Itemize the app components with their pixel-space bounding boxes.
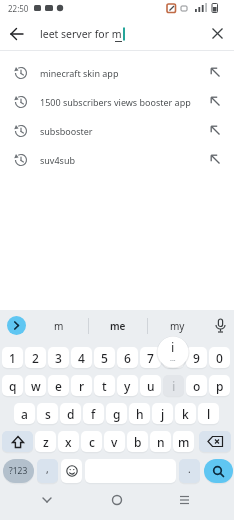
button[interactable]: c	[81, 431, 102, 452]
button[interactable]: n	[150, 431, 171, 452]
button[interactable]: i	[163, 375, 184, 396]
staticText: f	[91, 406, 96, 422]
button[interactable]: ?123	[3, 459, 34, 483]
button[interactable]	[156, 483, 234, 520]
button[interactable]: 8	[163, 347, 184, 368]
staticText: g	[113, 406, 121, 422]
button[interactable]: me	[89, 310, 147, 341]
button[interactable]: 5	[94, 347, 115, 368]
button[interactable]	[2, 431, 33, 452]
button[interactable]: s	[37, 403, 58, 424]
staticText: 22:50	[8, 3, 29, 14]
staticText: r	[79, 378, 85, 394]
staticText: me	[110, 319, 126, 333]
button[interactable]	[204, 459, 233, 483]
staticText: 3	[55, 350, 62, 366]
button[interactable]	[78, 483, 156, 520]
button[interactable]: minecraft skin app	[0, 58, 234, 87]
staticText: i	[171, 338, 175, 356]
button[interactable]	[0, 483, 78, 520]
staticText: y	[124, 378, 131, 394]
button[interactable]: r	[71, 375, 92, 396]
staticText: l	[207, 406, 211, 422]
button[interactable]: f	[83, 403, 104, 424]
button[interactable]: z	[35, 431, 56, 452]
staticText: q	[9, 378, 17, 394]
button[interactable]: e	[48, 375, 69, 396]
button[interactable]	[200, 17, 234, 50]
button[interactable]	[61, 459, 82, 483]
button[interactable]: g	[106, 403, 127, 424]
staticText: my	[170, 319, 185, 333]
button[interactable]: 2	[25, 347, 46, 368]
staticText: h	[136, 406, 144, 422]
button[interactable]: u	[140, 375, 161, 396]
button[interactable]: k	[175, 403, 196, 424]
staticText: n	[157, 434, 165, 450]
staticText: ?123	[9, 465, 28, 477]
button[interactable]: d	[60, 403, 81, 424]
staticText: i	[172, 378, 176, 394]
staticText: u	[147, 378, 155, 394]
button[interactable]: 1500 subscribers views booster app	[0, 87, 234, 116]
button[interactable]: a	[14, 403, 35, 424]
button[interactable]: 6	[117, 347, 138, 368]
staticText: subsbooster	[40, 125, 93, 137]
button[interactable]: q	[2, 375, 23, 396]
staticText: d	[67, 406, 75, 422]
staticText: p	[216, 378, 224, 394]
staticText: x	[65, 434, 72, 450]
button[interactable]: 1	[2, 347, 23, 368]
button[interactable]: suv4sub	[0, 145, 234, 174]
button[interactable]: j	[152, 403, 173, 424]
staticText: z	[43, 434, 49, 450]
button[interactable]: m	[173, 431, 194, 452]
button[interactable]: 9	[186, 347, 207, 368]
button[interactable]: 4	[71, 347, 92, 368]
button[interactable]: o	[186, 375, 207, 396]
staticText: ,	[46, 462, 49, 476]
button[interactable]	[206, 310, 234, 341]
staticText: b	[134, 434, 142, 450]
button[interactable]: l	[198, 403, 219, 424]
staticText: 6	[124, 350, 131, 366]
staticText: minecraft skin app	[40, 67, 119, 79]
button[interactable]: v	[104, 431, 125, 452]
button[interactable]: 7	[140, 347, 161, 368]
button[interactable]	[199, 431, 231, 452]
staticText: ...	[170, 354, 176, 364]
button[interactable]	[7, 316, 26, 335]
button[interactable]: ,	[37, 459, 58, 483]
staticText: 0	[216, 350, 223, 366]
button[interactable]: w	[25, 375, 46, 396]
staticText: s	[45, 406, 51, 422]
staticText: leet server for m	[40, 27, 122, 41]
staticText: v	[111, 434, 118, 450]
button[interactable]	[0, 17, 34, 50]
staticText: o	[193, 378, 201, 394]
staticText: j	[161, 406, 165, 422]
staticText: 8	[170, 350, 177, 366]
staticText: suv4sub	[40, 154, 76, 166]
button[interactable]: x	[58, 431, 79, 452]
button[interactable]: h	[129, 403, 150, 424]
button[interactable]: b	[127, 431, 148, 452]
staticText: 5	[101, 350, 108, 366]
button[interactable]: 0	[209, 347, 230, 368]
staticText: w	[31, 378, 41, 394]
button[interactable]: t	[94, 375, 115, 396]
button[interactable]: my	[148, 310, 206, 341]
button[interactable]: .	[179, 459, 200, 483]
button[interactable]: m	[30, 310, 88, 341]
button[interactable]: p	[209, 375, 230, 396]
staticText: 7	[147, 350, 154, 366]
button[interactable]: 3	[48, 347, 69, 368]
staticText: 1500 subscribers views booster app	[40, 96, 191, 108]
button[interactable]: y	[117, 375, 138, 396]
staticText: .	[188, 462, 191, 476]
staticText: 2	[32, 350, 39, 366]
button[interactable]: subsbooster	[0, 116, 234, 145]
staticText: e	[55, 378, 62, 394]
staticText: k	[182, 406, 189, 422]
